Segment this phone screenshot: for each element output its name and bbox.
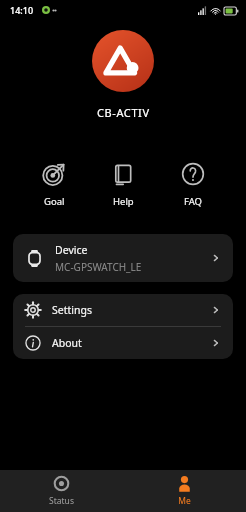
- staticText: MC-GPSWATCH_LE: [55, 260, 142, 274]
- staticText: CB-ACTIV: [97, 105, 150, 120]
- button[interactable]: Device: [13, 234, 233, 282]
- staticText: Device: [55, 243, 88, 257]
- button[interactable]: About: [13, 327, 233, 359]
- button[interactable]: Help: [93, 160, 153, 210]
- button[interactable]: Settings: [13, 294, 233, 326]
- staticText: About: [52, 336, 211, 350]
- staticText: 14:10: [10, 4, 34, 16]
- button[interactable]: FAQ: [163, 160, 223, 210]
- button[interactable]: Status: [0, 471, 123, 511]
- staticText: Me: [178, 495, 191, 507]
- staticText: Goal: [44, 195, 65, 208]
- button[interactable]: Goal: [24, 160, 84, 210]
- staticText: Status: [49, 495, 74, 507]
- staticText: Help: [113, 195, 134, 208]
- staticText: Settings: [52, 303, 211, 317]
- button[interactable]: Me: [123, 471, 246, 511]
- staticText: FAQ: [184, 195, 203, 208]
